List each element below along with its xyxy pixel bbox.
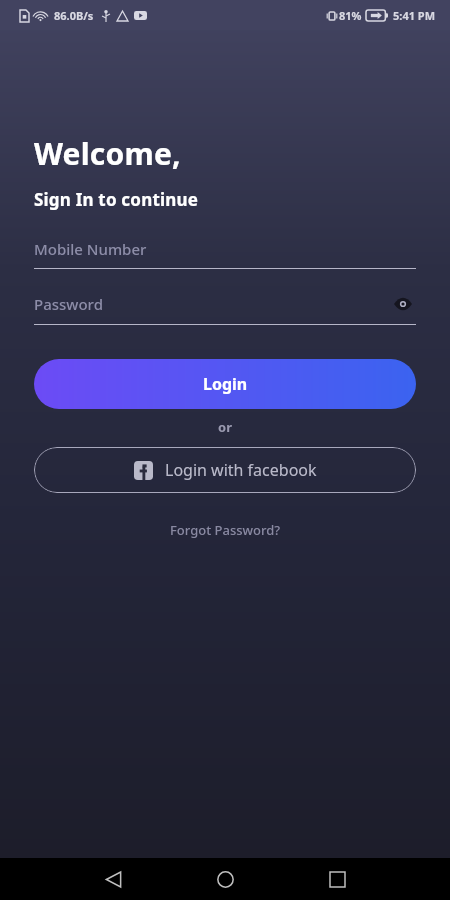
staticText: Welcome,	[34, 133, 181, 174]
button[interactable]: Login with facebook	[34, 447, 416, 493]
staticText: 86.0B/s	[54, 8, 94, 23]
staticText: Password	[34, 294, 390, 314]
staticText: Mobile Number	[34, 239, 416, 259]
staticText: 5:41 PM	[393, 8, 436, 23]
button[interactable]: Recent apps	[315, 858, 359, 900]
button[interactable]: Back	[91, 858, 135, 900]
button[interactable]: Home	[203, 858, 247, 900]
staticText: 81%	[339, 8, 362, 23]
staticText: Sign In to continue	[34, 188, 199, 211]
staticText: Login	[203, 373, 248, 395]
button[interactable]: Mobile Number	[34, 239, 416, 269]
staticText: Login with facebook	[165, 459, 317, 481]
button[interactable]: Password	[34, 291, 416, 325]
button[interactable]: Forgot Password?	[158, 517, 293, 543]
button[interactable]: Login	[34, 359, 416, 409]
button[interactable]: Show password	[390, 291, 416, 317]
staticText: or	[0, 418, 450, 436]
